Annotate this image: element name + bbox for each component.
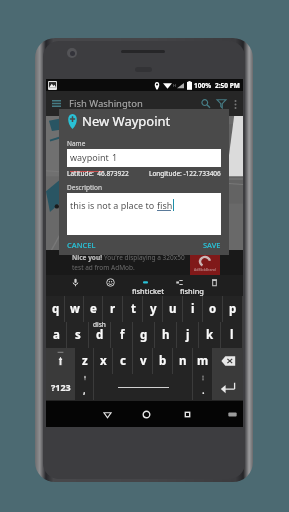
button[interactable]: Voice input (69, 276, 81, 288)
button[interactable]: w (65, 296, 84, 322)
button[interactable]: f (111, 322, 133, 348)
staticText: AdMobBrand (194, 267, 216, 272)
button[interactable]: Recent apps (179, 406, 196, 423)
button[interactable]: Open navigation drawer (50, 97, 63, 110)
button[interactable]: t (123, 296, 143, 322)
button[interactable]: p (223, 296, 243, 322)
button[interactable]: j (177, 322, 199, 348)
staticText: 1 (112, 151, 118, 163)
staticText: t (131, 301, 136, 317)
button[interactable]: Space (94, 374, 193, 400)
button[interactable]: ?123 (46, 374, 75, 400)
button[interactable]: m (193, 348, 213, 374)
button[interactable]: v (133, 348, 153, 374)
staticText: Latitude: 46.873922 (67, 169, 129, 178)
button[interactable]: Home (138, 406, 155, 423)
staticText: a (53, 327, 60, 343)
button[interactable]: Switch keyboard (224, 406, 241, 423)
staticText: j (186, 327, 190, 343)
staticText: fishing (180, 286, 204, 296)
staticText: m (197, 353, 209, 369)
button[interactable]: s (67, 322, 89, 348)
staticText: CANCEL (67, 240, 96, 250)
button[interactable]: a (46, 322, 67, 348)
staticText: . (202, 383, 205, 397)
staticText: x (100, 353, 107, 369)
staticText: Name (67, 139, 86, 148)
staticText: p (229, 301, 237, 317)
button[interactable]: e (84, 296, 103, 322)
staticText: u (169, 301, 177, 317)
button[interactable]: Backspace (213, 348, 243, 374)
staticText: c (120, 353, 126, 369)
staticText: , (83, 383, 86, 397)
staticText: i (191, 301, 195, 317)
button[interactable]: d (89, 322, 111, 348)
staticText: 2:50 PM (215, 81, 240, 90)
button[interactable]: r (103, 296, 123, 322)
button[interactable]: u (163, 296, 183, 322)
button[interactable]: Enter (213, 374, 243, 400)
staticText: 100% (194, 81, 212, 90)
staticText: d (96, 327, 104, 343)
button[interactable]: Keyboard settings (173, 276, 185, 288)
staticText: w (70, 301, 80, 317)
button[interactable]: , (75, 374, 94, 400)
button[interactable]: q (46, 296, 65, 322)
staticText: b (159, 353, 167, 369)
button[interactable]: y (143, 296, 163, 322)
staticText: n (179, 353, 187, 369)
button[interactable]: More options (229, 98, 241, 110)
staticText: v (140, 353, 147, 369)
button[interactable]: g (133, 322, 155, 348)
staticText: ?123 (51, 381, 71, 393)
staticText: z (82, 353, 88, 369)
staticText: h (162, 327, 170, 343)
button[interactable]: Search (198, 96, 213, 111)
button[interactable]: Delete (208, 276, 220, 288)
button[interactable]: Filter (214, 96, 229, 111)
button[interactable]: CANCEL (64, 237, 99, 253)
staticText: New Waypoint (82, 112, 171, 130)
staticText: g (140, 327, 148, 343)
button[interactable]: x (94, 348, 113, 374)
staticText: fishticket (132, 286, 164, 296)
staticText: k (206, 327, 214, 343)
staticText: this is not a place to (70, 199, 157, 211)
button[interactable]: . (193, 374, 213, 400)
staticText: Nice you! (72, 253, 104, 262)
staticText: l (230, 327, 234, 343)
button[interactable]: Shift (46, 348, 75, 374)
button[interactable]: SAVE (200, 237, 224, 253)
staticText: s (75, 327, 81, 343)
button[interactable]: h (155, 322, 177, 348)
button[interactable]: n (173, 348, 193, 374)
staticText: dish (93, 320, 106, 329)
staticText: fish (157, 199, 173, 211)
staticText: SAVE (203, 240, 221, 250)
button[interactable]: k (199, 322, 221, 348)
staticText: test ad from AdMob. (72, 263, 135, 272)
button[interactable]: Emoji (104, 276, 116, 288)
staticText: y (150, 301, 157, 317)
staticText: Fish Washington (69, 97, 143, 110)
staticText: You're displaying a 320x50 (104, 253, 185, 262)
staticText: q (52, 301, 60, 317)
button[interactable]: l (221, 322, 243, 348)
button[interactable]: o (203, 296, 223, 322)
staticText: o (209, 301, 217, 317)
staticText: waypoint (70, 151, 109, 163)
staticText: r (110, 301, 116, 317)
button[interactable]: Clipboard (139, 276, 151, 288)
staticText: e (90, 301, 97, 317)
staticText: Description (67, 183, 102, 192)
staticText: f (120, 327, 125, 343)
staticText: H (173, 83, 176, 88)
button[interactable]: Back (99, 406, 116, 423)
button[interactable]: b (153, 348, 173, 374)
staticText: Longitude: -122.733406 (149, 169, 221, 178)
button[interactable]: i (183, 296, 203, 322)
button[interactable]: z (75, 348, 94, 374)
button[interactable]: c (113, 348, 133, 374)
